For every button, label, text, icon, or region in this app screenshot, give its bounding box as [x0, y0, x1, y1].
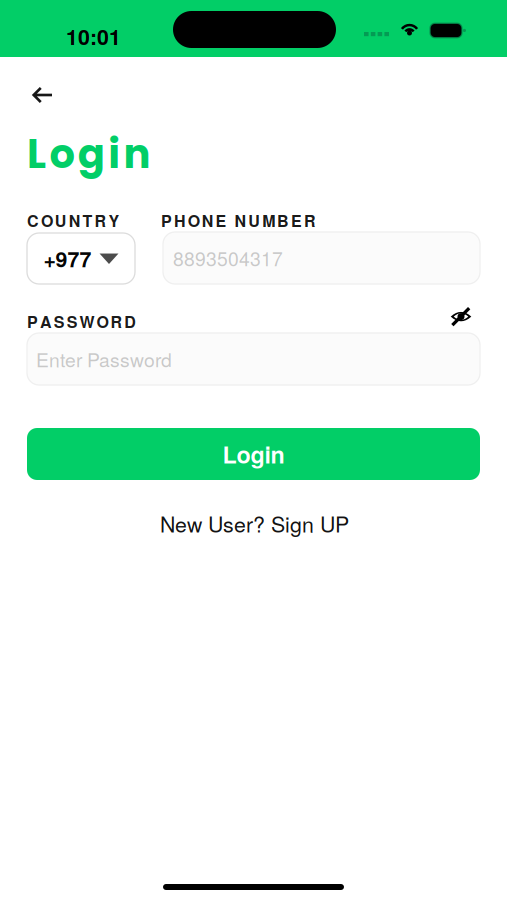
button[interactable]: New User? Sign UP [152, 503, 357, 543]
staticText: W [80, 310, 95, 333]
staticText: Login [222, 437, 284, 471]
button[interactable]: Back [21, 75, 66, 115]
button[interactable]: Enter Password [27, 333, 480, 385]
button[interactable]: Show password [441, 299, 481, 334]
staticText: C [27, 209, 39, 232]
staticText: M [262, 209, 275, 232]
staticText: R [94, 209, 106, 232]
staticText: 10:01 [66, 21, 121, 51]
staticText: g [78, 126, 105, 182]
staticText: R [110, 310, 122, 333]
button[interactable]: Login [27, 428, 480, 480]
staticText: N [234, 209, 246, 232]
staticText: E [291, 209, 302, 232]
staticText: Y [108, 209, 119, 232]
button[interactable]: 8893504317 [163, 232, 480, 284]
staticText: U [248, 209, 260, 232]
staticText: n [124, 126, 151, 182]
staticText: 8893504317 [173, 244, 283, 272]
staticText: E [216, 209, 227, 232]
staticText: O [96, 310, 108, 333]
staticText: Enter Password [36, 345, 172, 373]
staticText: B [277, 209, 289, 232]
button[interactable]: +977 [27, 233, 135, 284]
staticText: T [83, 209, 93, 232]
staticText: P [27, 310, 38, 333]
staticText: i [108, 126, 120, 182]
staticText: P [161, 209, 172, 232]
staticText: H [174, 209, 186, 232]
staticText: o [49, 126, 74, 182]
staticText: O [41, 209, 53, 232]
staticText: S [54, 310, 65, 333]
staticText: D [124, 310, 136, 333]
staticText: L [27, 126, 46, 182]
staticText: +977 [43, 243, 91, 274]
staticText: N [202, 209, 214, 232]
staticText: N [69, 209, 81, 232]
staticText: R [304, 209, 316, 232]
staticText: U [55, 209, 67, 232]
staticText: O [188, 209, 200, 232]
staticText: New User? Sign UP [160, 508, 349, 538]
staticText: A [40, 310, 52, 333]
staticText: S [67, 310, 78, 333]
